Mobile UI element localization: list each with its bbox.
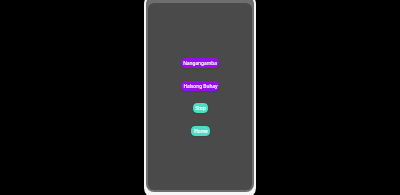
- staticText: Halsong Buhay: [183, 83, 218, 90]
- button[interactable]: Home: [191, 126, 210, 136]
- button[interactable]: Nangangamba: [181, 58, 219, 68]
- staticText: Home: [194, 128, 208, 135]
- button[interactable]: Stop: [193, 103, 208, 113]
- staticText: Stop: [195, 105, 206, 112]
- staticText: Nangangamba: [183, 60, 217, 67]
- button[interactable]: Halsong Buhay: [181, 81, 219, 91]
